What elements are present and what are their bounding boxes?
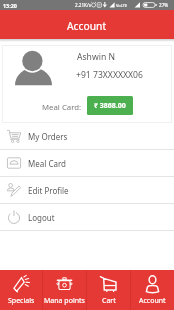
staticText: My Orders	[28, 131, 68, 142]
staticText: ₹ 3868.00	[94, 101, 126, 111]
button[interactable]: My Orders	[0, 123, 174, 149]
button[interactable]: Edit Profile	[0, 177, 174, 203]
staticText: Meal Card:	[42, 102, 82, 113]
staticText: Meal Card	[28, 158, 67, 169]
button[interactable]: Mana points	[43, 270, 86, 310]
button[interactable]: Meal Card	[0, 150, 174, 176]
staticText: Edit Profile	[28, 185, 69, 196]
staticText: VoLTE	[116, 3, 128, 8]
button[interactable]: Cart	[87, 270, 130, 310]
staticText: Account	[67, 19, 107, 33]
button[interactable]: ₹ 3868.00	[87, 96, 133, 115]
staticText: 13:20	[3, 2, 17, 9]
staticText: Cart	[102, 296, 116, 306]
staticText: Mana points	[44, 296, 85, 306]
staticText: Account	[139, 296, 166, 306]
staticText: 27%	[159, 2, 169, 8]
staticText: 2.21K/s	[75, 2, 91, 8]
staticText: Ashwin N	[77, 51, 115, 63]
button[interactable]: Logout	[0, 204, 174, 230]
staticText: Logout	[28, 212, 55, 223]
button[interactable]: Account	[131, 270, 174, 310]
staticText: +91 73XXXXXX06	[76, 69, 143, 81]
button[interactable]: Specials	[0, 270, 42, 310]
staticText: Specials	[8, 296, 35, 306]
